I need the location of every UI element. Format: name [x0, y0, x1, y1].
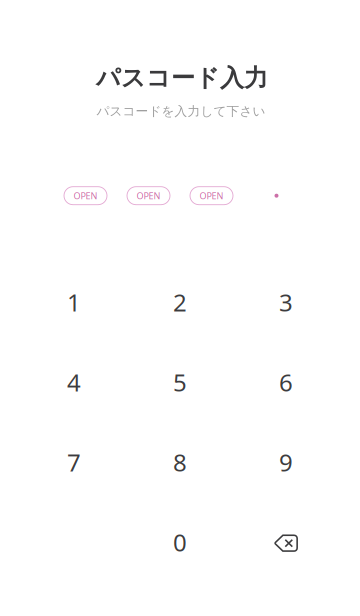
staticText: パスコード入力	[96, 63, 268, 93]
button[interactable]: 0	[127, 502, 233, 582]
staticText: 4	[67, 366, 81, 398]
button[interactable]: 9	[233, 422, 339, 502]
button[interactable]: 5	[127, 342, 233, 422]
staticText: 2	[173, 286, 187, 318]
staticText: 3	[279, 286, 293, 318]
button[interactable]: 8	[127, 422, 233, 502]
staticText: 8	[173, 446, 187, 478]
staticText: 0	[173, 526, 187, 558]
button[interactable]: 3	[233, 262, 339, 342]
button[interactable]: 7	[21, 422, 127, 502]
staticText: 7	[67, 446, 81, 478]
button[interactable]: 1	[21, 262, 127, 342]
staticText: 9	[279, 446, 293, 478]
button[interactable]: Delete	[233, 502, 339, 582]
button[interactable]: 2	[127, 262, 233, 342]
staticText: OPEN	[73, 189, 97, 202]
staticText: 5	[173, 366, 187, 398]
staticText: 1	[67, 286, 81, 318]
staticText: OPEN	[199, 189, 223, 202]
staticText: パスコードを入力して下さい	[96, 103, 265, 119]
button[interactable]: 4	[21, 342, 127, 422]
staticText: OPEN	[136, 189, 160, 202]
button[interactable]: 6	[233, 342, 339, 422]
staticText: 6	[279, 366, 293, 398]
